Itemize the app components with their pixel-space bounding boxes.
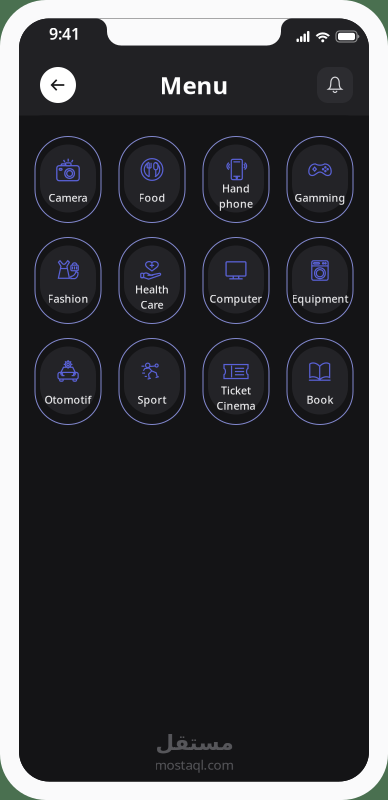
- staticText: Book: [306, 392, 333, 407]
- staticText: Fashion: [47, 291, 88, 306]
- staticText: Cinema: [216, 398, 255, 413]
- button[interactable]: Health: [118, 237, 185, 323]
- staticText: Otomotif: [44, 392, 91, 407]
- button[interactable]: Gamming: [286, 136, 353, 222]
- staticText: Menu: [159, 69, 228, 101]
- staticText: Health: [135, 282, 169, 296]
- staticText: phone: [219, 196, 253, 211]
- staticText: Gamming: [294, 190, 345, 205]
- button[interactable]: Camera: [34, 136, 101, 222]
- staticText: mostaql.com: [154, 756, 233, 773]
- button[interactable]: Ticket: [202, 338, 269, 424]
- staticText: Computer: [209, 291, 262, 306]
- button[interactable]: Food: [118, 136, 185, 222]
- staticText: Equipment: [291, 291, 348, 306]
- staticText: Hand: [222, 181, 250, 195]
- staticText: مستقل: [155, 731, 233, 755]
- staticText: 9:41: [49, 23, 80, 44]
- button[interactable]: Otomotif: [34, 338, 101, 424]
- staticText: Camera: [48, 190, 87, 205]
- button[interactable]: Fashion: [34, 237, 101, 323]
- button[interactable]: Notifications: [313, 63, 357, 107]
- staticText: Food: [138, 190, 165, 205]
- button[interactable]: Computer: [202, 237, 269, 323]
- button[interactable]: Sport: [118, 338, 185, 424]
- button[interactable]: Hand: [202, 136, 269, 222]
- staticText: Ticket: [221, 383, 251, 397]
- button[interactable]: Equipment: [286, 237, 353, 323]
- button[interactable]: Book: [286, 338, 353, 424]
- staticText: Sport: [137, 392, 166, 407]
- staticText: Care: [140, 297, 163, 312]
- button[interactable]: Back: [36, 63, 80, 107]
